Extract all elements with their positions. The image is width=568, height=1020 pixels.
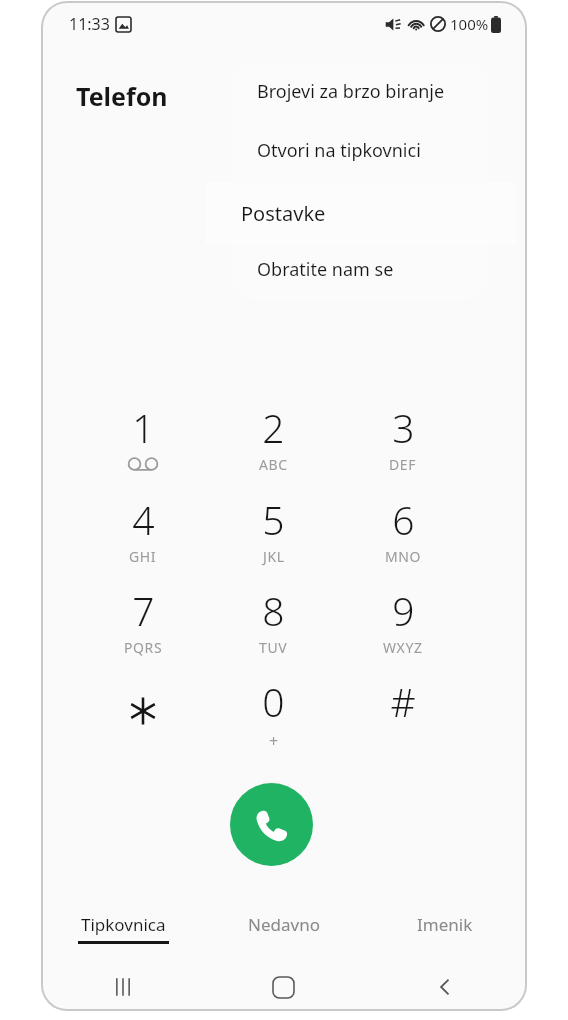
staticText: ABC <box>259 455 288 474</box>
button[interactable]: 5 <box>208 493 338 581</box>
staticText: Postavke <box>241 200 326 227</box>
button[interactable]: Recents <box>43 965 203 1009</box>
staticText: 4 <box>132 493 155 546</box>
staticText: PQRS <box>124 638 163 657</box>
staticText: JKL <box>263 547 285 566</box>
staticText: Brojevi za brzo biranje <box>257 79 445 104</box>
staticText: MNO <box>385 547 422 566</box>
staticText: Imenik <box>417 913 473 936</box>
staticText: 9 <box>392 584 415 637</box>
staticText: 11:33 <box>69 13 110 35</box>
button[interactable]: # <box>338 675 468 763</box>
staticText: WXYZ <box>383 638 423 657</box>
button[interactable]: 6 <box>338 493 468 581</box>
button[interactable]: Home <box>203 965 364 1009</box>
button[interactable]: 0 <box>208 675 338 763</box>
button[interactable]: 4 <box>78 493 208 581</box>
staticText: 7 <box>132 584 155 637</box>
button[interactable]: 1 <box>78 401 208 489</box>
staticText: Tipkovnica <box>81 913 166 936</box>
staticText: Otvori na tipkovnici <box>257 138 421 163</box>
staticText: DEF <box>389 455 417 474</box>
button[interactable]: Back <box>364 965 525 1009</box>
button[interactable] <box>78 675 208 763</box>
staticText: Telefon <box>76 79 168 113</box>
button[interactable]: Call <box>230 783 313 866</box>
button[interactable]: Imenik <box>364 905 525 959</box>
staticText: 1 <box>132 401 155 454</box>
staticText: Obratite nam se <box>257 257 394 282</box>
staticText: 100% <box>450 14 489 34</box>
button[interactable]: Postavke <box>205 182 516 244</box>
staticText: 8 <box>262 584 285 637</box>
button[interactable]: Brojevi za brzo biranje <box>231 62 488 121</box>
staticText: 5 <box>262 493 285 546</box>
staticText: + <box>269 730 279 752</box>
staticText: Nedavno <box>248 913 320 936</box>
staticText: GHI <box>129 547 157 566</box>
button[interactable]: Obratite nam se <box>231 240 488 299</box>
button[interactable]: Tipkovnica <box>43 905 203 959</box>
button[interactable]: 8 <box>208 584 338 672</box>
button[interactable]: 3 <box>338 401 468 489</box>
staticText: 0 <box>262 675 285 728</box>
staticText: 6 <box>392 493 415 546</box>
button[interactable]: 9 <box>338 584 468 672</box>
button[interactable]: Otvori na tipkovnici <box>231 121 488 180</box>
staticText: TUV <box>259 638 288 657</box>
button[interactable]: Nedavno <box>203 905 364 959</box>
button[interactable]: 2 <box>208 401 338 489</box>
button[interactable]: 7 <box>78 584 208 672</box>
staticText: 3 <box>392 401 415 454</box>
staticText: # <box>390 675 416 728</box>
staticText: 2 <box>262 401 285 454</box>
